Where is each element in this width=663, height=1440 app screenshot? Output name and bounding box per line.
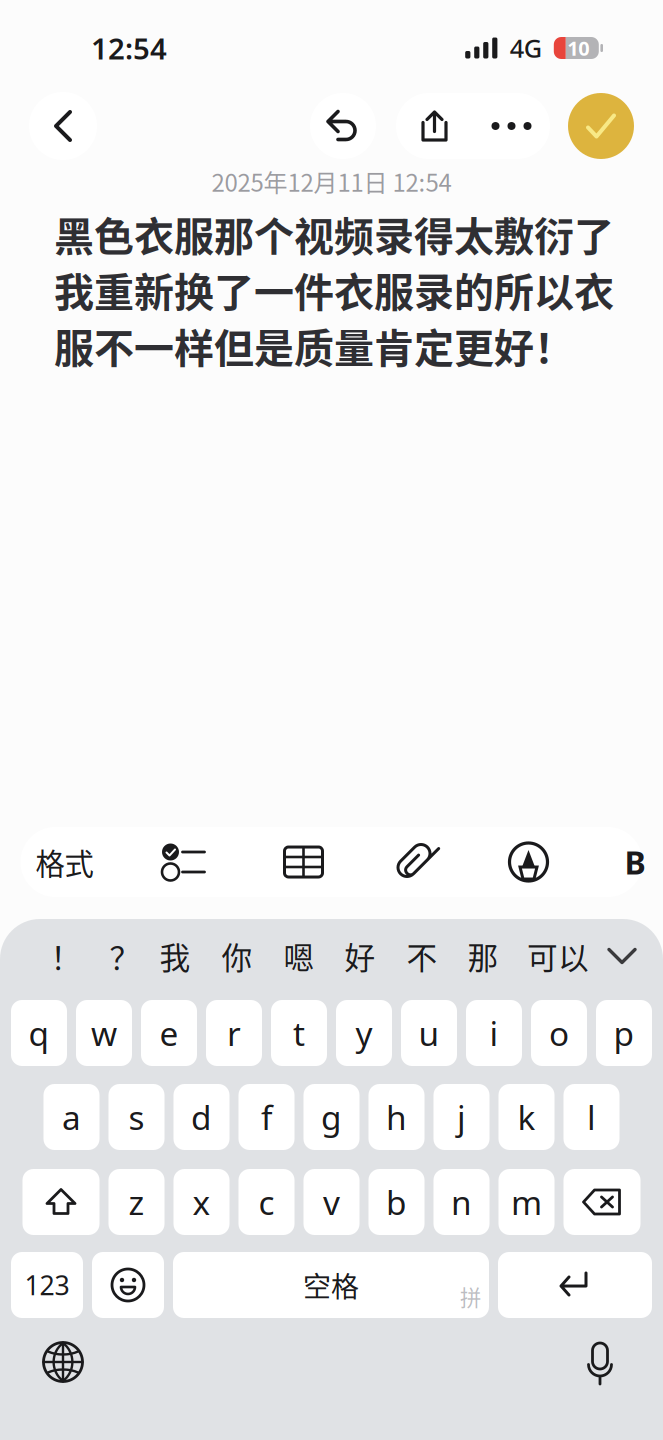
staticText: t	[293, 1011, 305, 1055]
button[interactable]: n	[433, 1169, 489, 1235]
button[interactable]: a	[43, 1084, 99, 1150]
button[interactable]: h	[368, 1084, 424, 1150]
button[interactable]: d	[173, 1084, 229, 1150]
staticText: l	[587, 1095, 596, 1139]
staticText: 可以	[527, 934, 589, 978]
staticText: 黑色衣服那个视频录得太敷衍了我重新换了一件衣服录的所以衣服不一样但是质量肯定更好…	[54, 205, 614, 375]
button[interactable]: m	[498, 1169, 554, 1235]
staticText: 2025年12月11日 12:54	[211, 164, 451, 199]
button[interactable]: l	[563, 1084, 619, 1150]
button[interactable]: i	[466, 1000, 522, 1066]
button[interactable]: e	[141, 1000, 197, 1066]
staticText: y	[355, 1011, 372, 1055]
button[interactable]: g	[303, 1084, 359, 1150]
staticText: 10	[567, 35, 589, 61]
button[interactable]: 你	[208, 922, 266, 990]
staticText: i	[489, 1011, 498, 1055]
button[interactable]: Back	[29, 92, 97, 160]
staticText: 那	[467, 934, 498, 978]
staticText: B	[624, 841, 645, 883]
button[interactable]: Share	[396, 93, 473, 159]
button[interactable]: w	[76, 1000, 132, 1066]
staticText: n	[451, 1180, 472, 1224]
staticText: 好	[344, 934, 375, 978]
button[interactable]: o	[531, 1000, 587, 1066]
staticText: 嗯	[283, 934, 314, 978]
staticText: a	[62, 1095, 81, 1139]
staticText: o	[549, 1011, 569, 1055]
button[interactable]: Table	[254, 827, 352, 897]
button[interactable]: ！	[38, 922, 94, 990]
staticText: 拼	[460, 1281, 481, 1312]
staticText: z	[128, 1180, 144, 1224]
staticText: ！	[50, 934, 81, 978]
staticText: s	[128, 1095, 144, 1139]
button[interactable]: Checklist	[108, 827, 254, 897]
staticText: r	[227, 1011, 241, 1055]
staticText: x	[192, 1180, 210, 1224]
staticText: 格式	[35, 841, 93, 883]
button[interactable]: q	[11, 1000, 67, 1066]
button[interactable]: j	[433, 1084, 489, 1150]
staticText: m	[511, 1180, 542, 1224]
staticText: 不	[406, 934, 437, 978]
staticText: 123	[24, 1267, 69, 1303]
button[interactable]: y	[336, 1000, 392, 1066]
button[interactable]: Done	[568, 93, 634, 159]
button[interactable]: More options	[473, 93, 550, 159]
button[interactable]: 好	[331, 922, 389, 990]
staticText: ？	[109, 934, 140, 978]
button[interactable]: Attach file	[352, 827, 480, 897]
button[interactable]: Hide candidates	[596, 926, 648, 986]
button[interactable]: f	[238, 1084, 294, 1150]
button[interactable]: z	[108, 1169, 164, 1235]
staticText: d	[191, 1095, 212, 1139]
staticText: q	[28, 1011, 49, 1055]
button[interactable]: ？	[97, 922, 153, 990]
staticText: k	[517, 1095, 535, 1139]
staticText: g	[321, 1095, 342, 1139]
button[interactable]: 可以	[515, 922, 601, 990]
staticText: c	[258, 1180, 274, 1224]
button[interactable]: c	[238, 1169, 294, 1235]
staticText: j	[457, 1095, 466, 1139]
staticText: 4G	[510, 31, 542, 65]
button[interactable]: Emoji	[92, 1252, 164, 1318]
button[interactable]: Space	[173, 1252, 489, 1318]
button[interactable]: Shift	[22, 1169, 99, 1235]
button[interactable]: Undo	[310, 93, 376, 159]
button[interactable]: Numbers	[11, 1252, 83, 1318]
staticText: f	[261, 1095, 272, 1139]
staticText: 12:54	[91, 28, 167, 67]
staticText: 空格	[303, 1265, 359, 1305]
button[interactable]: x	[173, 1169, 229, 1235]
button[interactable]: p	[596, 1000, 652, 1066]
button[interactable]: v	[303, 1169, 359, 1235]
button[interactable]: t	[271, 1000, 327, 1066]
staticText: u	[418, 1011, 439, 1055]
button[interactable]: Delete	[563, 1169, 640, 1235]
button[interactable]: u	[401, 1000, 457, 1066]
button[interactable]: s	[108, 1084, 164, 1150]
button[interactable]: 不	[393, 922, 451, 990]
button[interactable]: k	[498, 1084, 554, 1150]
staticText: 我	[159, 934, 190, 978]
button[interactable]: Next keyboard	[33, 1332, 93, 1392]
staticText: p	[613, 1011, 634, 1055]
button[interactable]: 我	[146, 922, 204, 990]
button[interactable]: Dictate	[570, 1332, 630, 1392]
staticText: v	[323, 1180, 340, 1224]
button[interactable]: Markup	[480, 827, 576, 897]
staticText: e	[159, 1011, 178, 1055]
button[interactable]: Return	[498, 1252, 652, 1318]
button[interactable]: Format	[20, 827, 108, 897]
button[interactable]: Bold	[576, 827, 663, 897]
button[interactable]: b	[368, 1169, 424, 1235]
staticText: h	[386, 1095, 407, 1139]
staticText: 你	[221, 934, 252, 978]
button[interactable]: r	[206, 1000, 262, 1066]
staticText: w	[91, 1011, 117, 1055]
button[interactable]: 那	[454, 922, 512, 990]
staticText: b	[386, 1180, 407, 1224]
button[interactable]: 嗯	[270, 922, 328, 990]
